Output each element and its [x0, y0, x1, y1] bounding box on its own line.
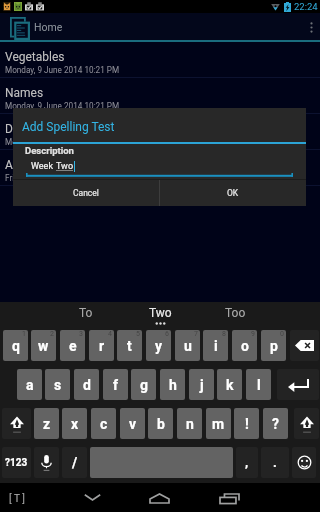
button[interactable]: Days: [0, 114, 320, 150]
button[interactable]: o: [232, 330, 257, 361]
staticText: 3: [79, 330, 83, 338]
staticText: d: [83, 377, 91, 393]
button[interactable]: r: [89, 330, 114, 361]
staticText: ,: [245, 455, 249, 470]
staticText: z: [43, 416, 51, 432]
button[interactable]: To: [48, 302, 123, 328]
staticText: Cancel: [73, 188, 99, 198]
button[interactable]: x: [62, 408, 87, 439]
staticText: Two: [56, 161, 74, 172]
button[interactable]: u: [175, 330, 200, 361]
staticText: e: [69, 338, 77, 354]
button[interactable]: ?: [263, 408, 288, 439]
button[interactable]: t: [117, 330, 142, 361]
button[interactable]: Symbols: [2, 447, 31, 478]
button[interactable]: Slash: [62, 447, 87, 478]
button[interactable]: k: [217, 369, 242, 400]
staticText: ?123: [5, 457, 28, 469]
staticText: 0: [280, 330, 284, 338]
staticText: t: [127, 338, 132, 354]
button[interactable]: v: [120, 408, 145, 439]
button[interactable]: OK: [160, 180, 306, 206]
staticText: !: [245, 416, 249, 432]
staticText: k: [226, 377, 234, 393]
staticText: w: [38, 338, 49, 354]
staticText: i: [214, 338, 218, 354]
staticText: To: [79, 306, 93, 320]
staticText: 2: [50, 330, 54, 338]
button[interactable]: Animals: [0, 150, 320, 186]
staticText: 4: [108, 330, 112, 338]
button[interactable]: Home: [141, 483, 179, 512]
staticText: Monday, 9 June 2014 10:21 PM: [5, 65, 120, 75]
button[interactable]: p: [261, 330, 286, 361]
button[interactable]: q: [3, 330, 28, 361]
button[interactable]: Hide keyboard: [74, 483, 112, 512]
button[interactable]: c: [91, 408, 116, 439]
button[interactable]: Two: [123, 302, 198, 328]
button[interactable]: Cancel: [13, 180, 159, 206]
staticText: Description: [25, 145, 74, 156]
button[interactable]: Vegetables: [0, 42, 320, 78]
button[interactable]: Comma: [236, 447, 258, 478]
staticText: n: [186, 416, 194, 432]
button[interactable]: Shift: [2, 408, 31, 439]
button[interactable]: y: [146, 330, 171, 361]
button[interactable]: Recent apps: [211, 483, 249, 512]
staticText: 8: [222, 330, 226, 338]
staticText: v: [129, 416, 137, 432]
staticText: .: [273, 455, 277, 470]
button[interactable]: g: [131, 369, 156, 400]
staticText: Vegetables: [5, 50, 65, 64]
staticText: 1: [22, 330, 26, 338]
button[interactable]: Home, navigate up: [0, 13, 112, 42]
button[interactable]: i: [203, 330, 228, 361]
button[interactable]: j: [189, 369, 214, 400]
staticText: Too: [225, 306, 246, 320]
staticText: Days: [5, 122, 32, 136]
button[interactable]: l: [246, 369, 271, 400]
button[interactable]: Names: [0, 78, 320, 114]
button[interactable]: Backspace: [290, 330, 319, 361]
button[interactable]: More options: [302, 13, 320, 42]
button[interactable]: w: [31, 330, 56, 361]
button[interactable]: h: [160, 369, 185, 400]
button[interactable]: a: [17, 369, 42, 400]
button[interactable]: Too: [198, 302, 273, 328]
button[interactable]: s: [45, 369, 70, 400]
staticText: r: [99, 338, 105, 354]
button[interactable]: n: [177, 408, 202, 439]
button[interactable]: Voice input: [34, 447, 59, 478]
button[interactable]: Enter: [277, 369, 319, 400]
button[interactable]: d: [74, 369, 99, 400]
staticText: l: [257, 377, 261, 393]
staticText: u: [184, 338, 192, 354]
staticText: x: [71, 416, 79, 432]
staticText: OK: [227, 188, 239, 198]
button[interactable]: e: [60, 330, 85, 361]
button[interactable]: f: [103, 369, 128, 400]
staticText: [ T ]: [9, 493, 25, 505]
button[interactable]: !: [234, 408, 259, 439]
staticText: 6: [165, 330, 169, 338]
staticText: 7: [194, 330, 198, 338]
staticText: Two: [149, 306, 172, 320]
staticText: Add Spelling Test: [22, 120, 115, 134]
staticText: j: [200, 377, 204, 393]
button[interactable]: Period: [261, 447, 289, 478]
staticText: g: [140, 377, 148, 393]
button[interactable]: b: [148, 408, 173, 439]
button[interactable]: Shift: [294, 408, 319, 439]
staticText: m: [212, 416, 225, 432]
staticText: ?: [272, 416, 279, 432]
button[interactable]: Emoji: [292, 447, 316, 478]
staticText: Home: [34, 21, 63, 33]
button[interactable]: m: [206, 408, 231, 439]
staticText: y: [155, 338, 163, 354]
staticText: Names: [5, 86, 44, 100]
button[interactable]: z: [34, 408, 59, 439]
staticText: b: [157, 416, 165, 432]
staticText: Week: [31, 161, 56, 172]
staticText: 9: [251, 330, 255, 338]
